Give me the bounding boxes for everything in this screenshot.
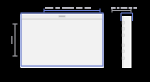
button[interactable]: Product dimension diagram <box>0 0 150 82</box>
